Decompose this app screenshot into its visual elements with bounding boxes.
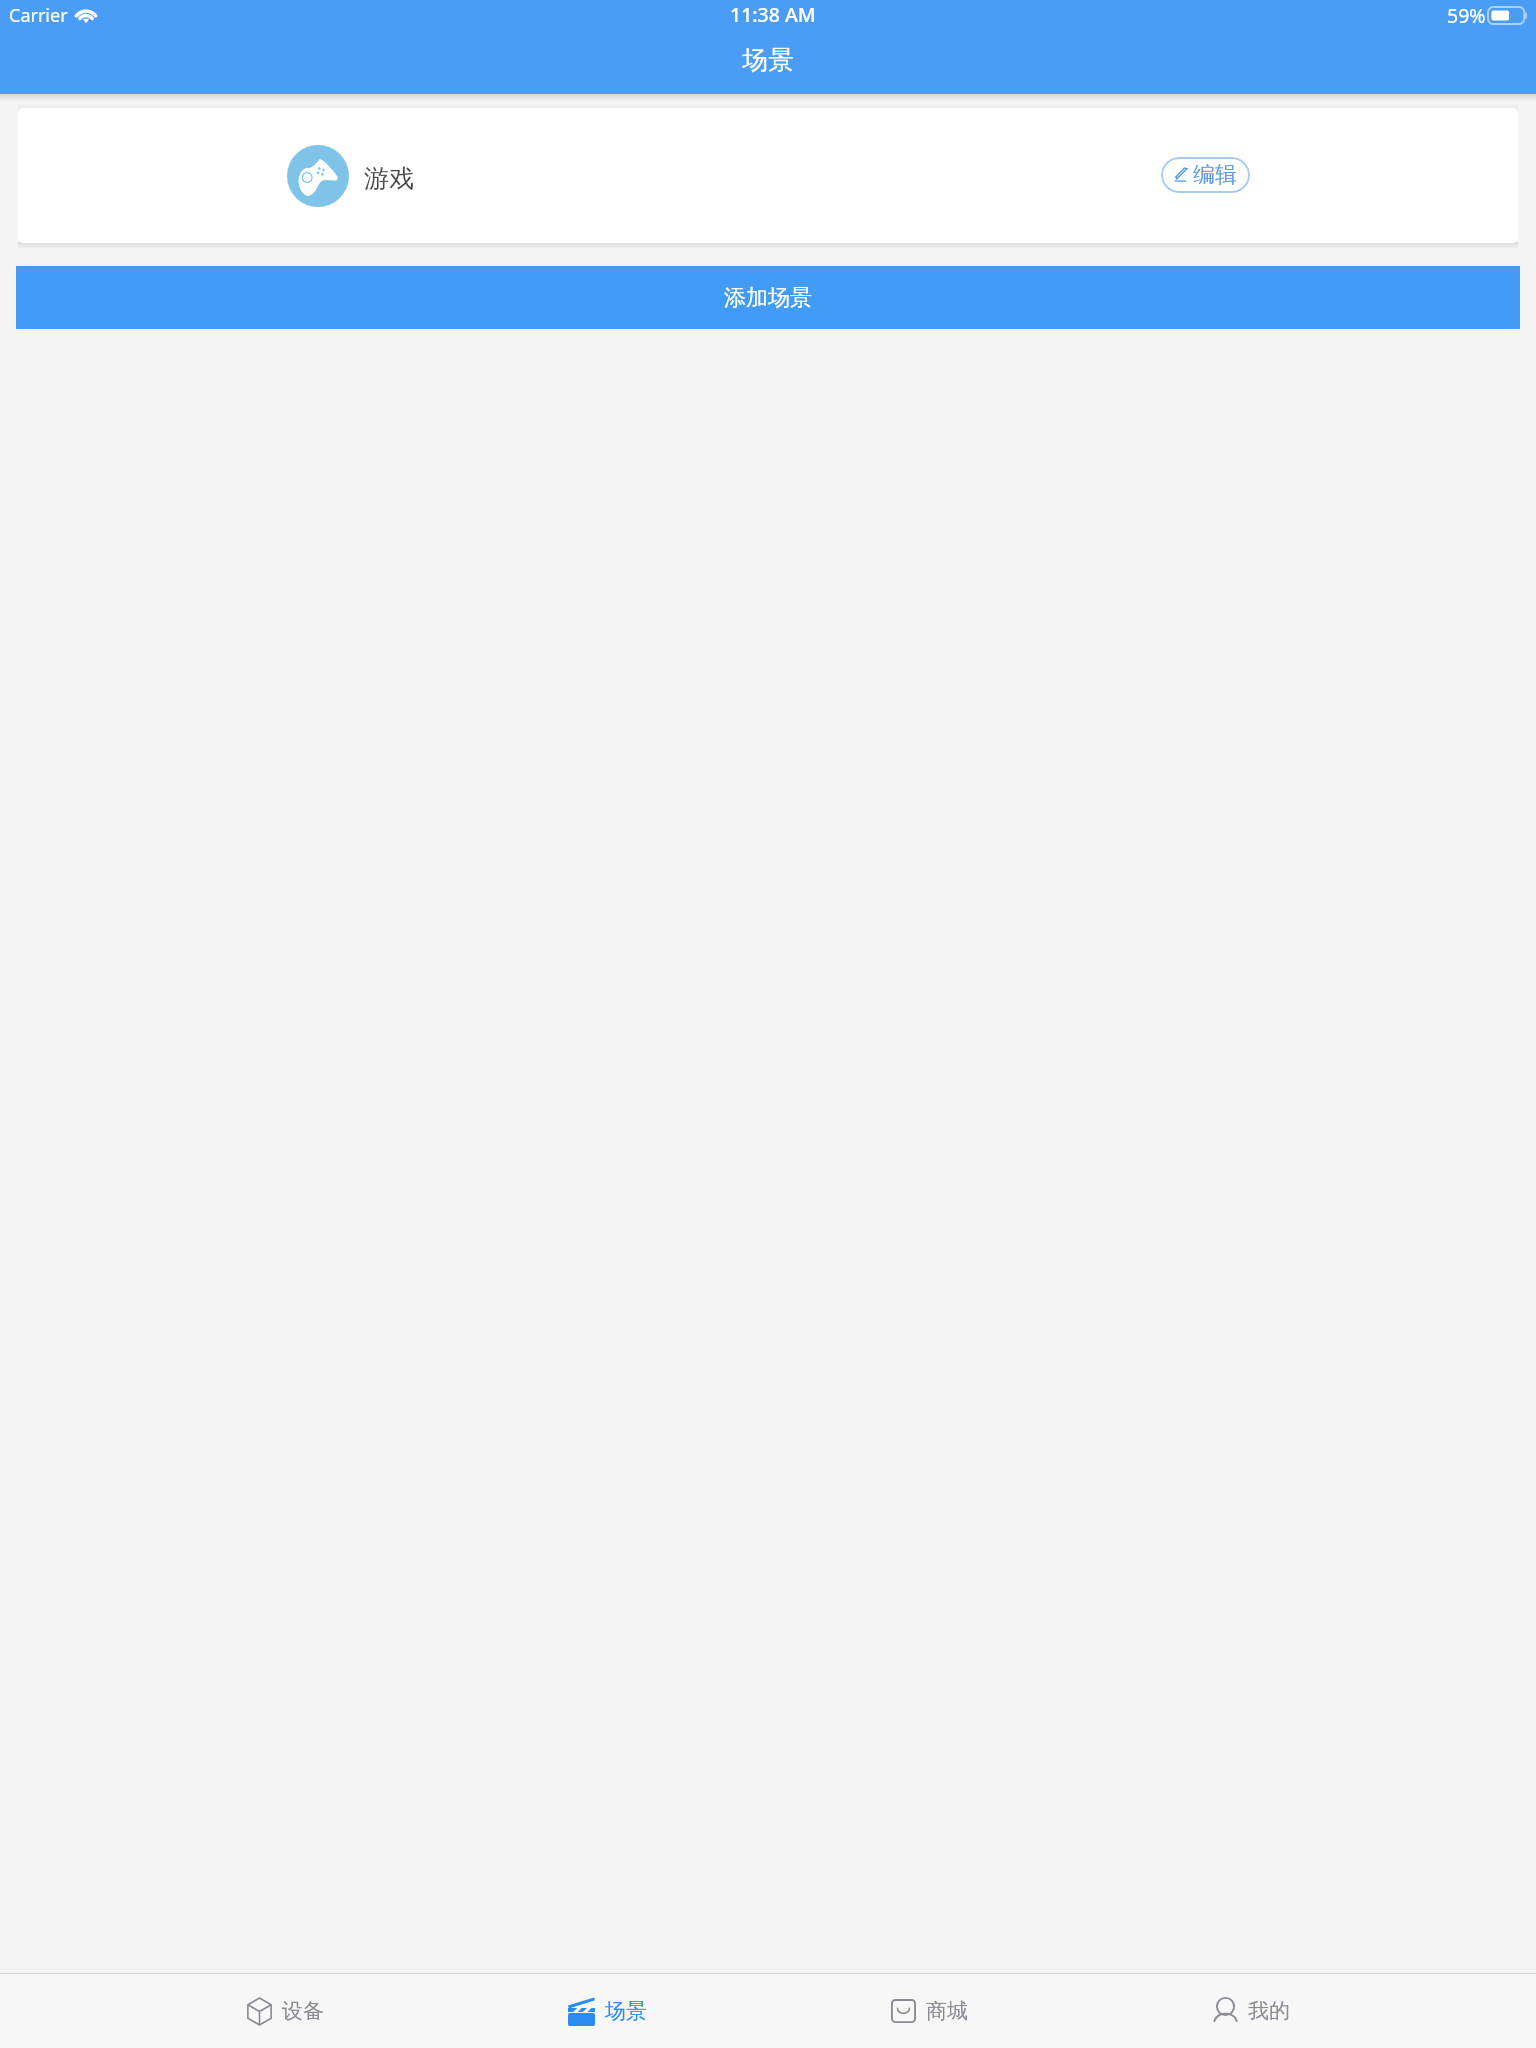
other: Battery 59 percent (1488, 7, 1527, 24)
staticText: 商城 (926, 1998, 968, 2024)
staticText: 我的 (1248, 1998, 1290, 2024)
staticText: Carrier (9, 3, 68, 28)
staticText: 游戏 (364, 163, 414, 194)
button[interactable]: 商城 (768, 1974, 1090, 2048)
staticText: 59% (1447, 2, 1486, 29)
button[interactable]: 我的 (1090, 1974, 1412, 2048)
staticText: 编辑 (1193, 161, 1237, 189)
staticText: 11:38 AM (730, 1, 816, 28)
button[interactable]: 游戏 (18, 108, 1518, 243)
button[interactable]: 添加场景 (16, 266, 1520, 329)
button[interactable]: 设备 (124, 1974, 446, 2048)
button[interactable]: 编辑 (1161, 157, 1250, 193)
staticText: 添加场景 (724, 284, 812, 312)
other: Wi-Fi (74, 7, 98, 23)
staticText: 场景 (742, 44, 794, 77)
button[interactable]: 游戏 (287, 145, 414, 207)
staticText: 场景 (605, 1998, 647, 2024)
button[interactable]: 场景 (446, 1974, 768, 2048)
staticText: 设备 (282, 1998, 324, 2024)
